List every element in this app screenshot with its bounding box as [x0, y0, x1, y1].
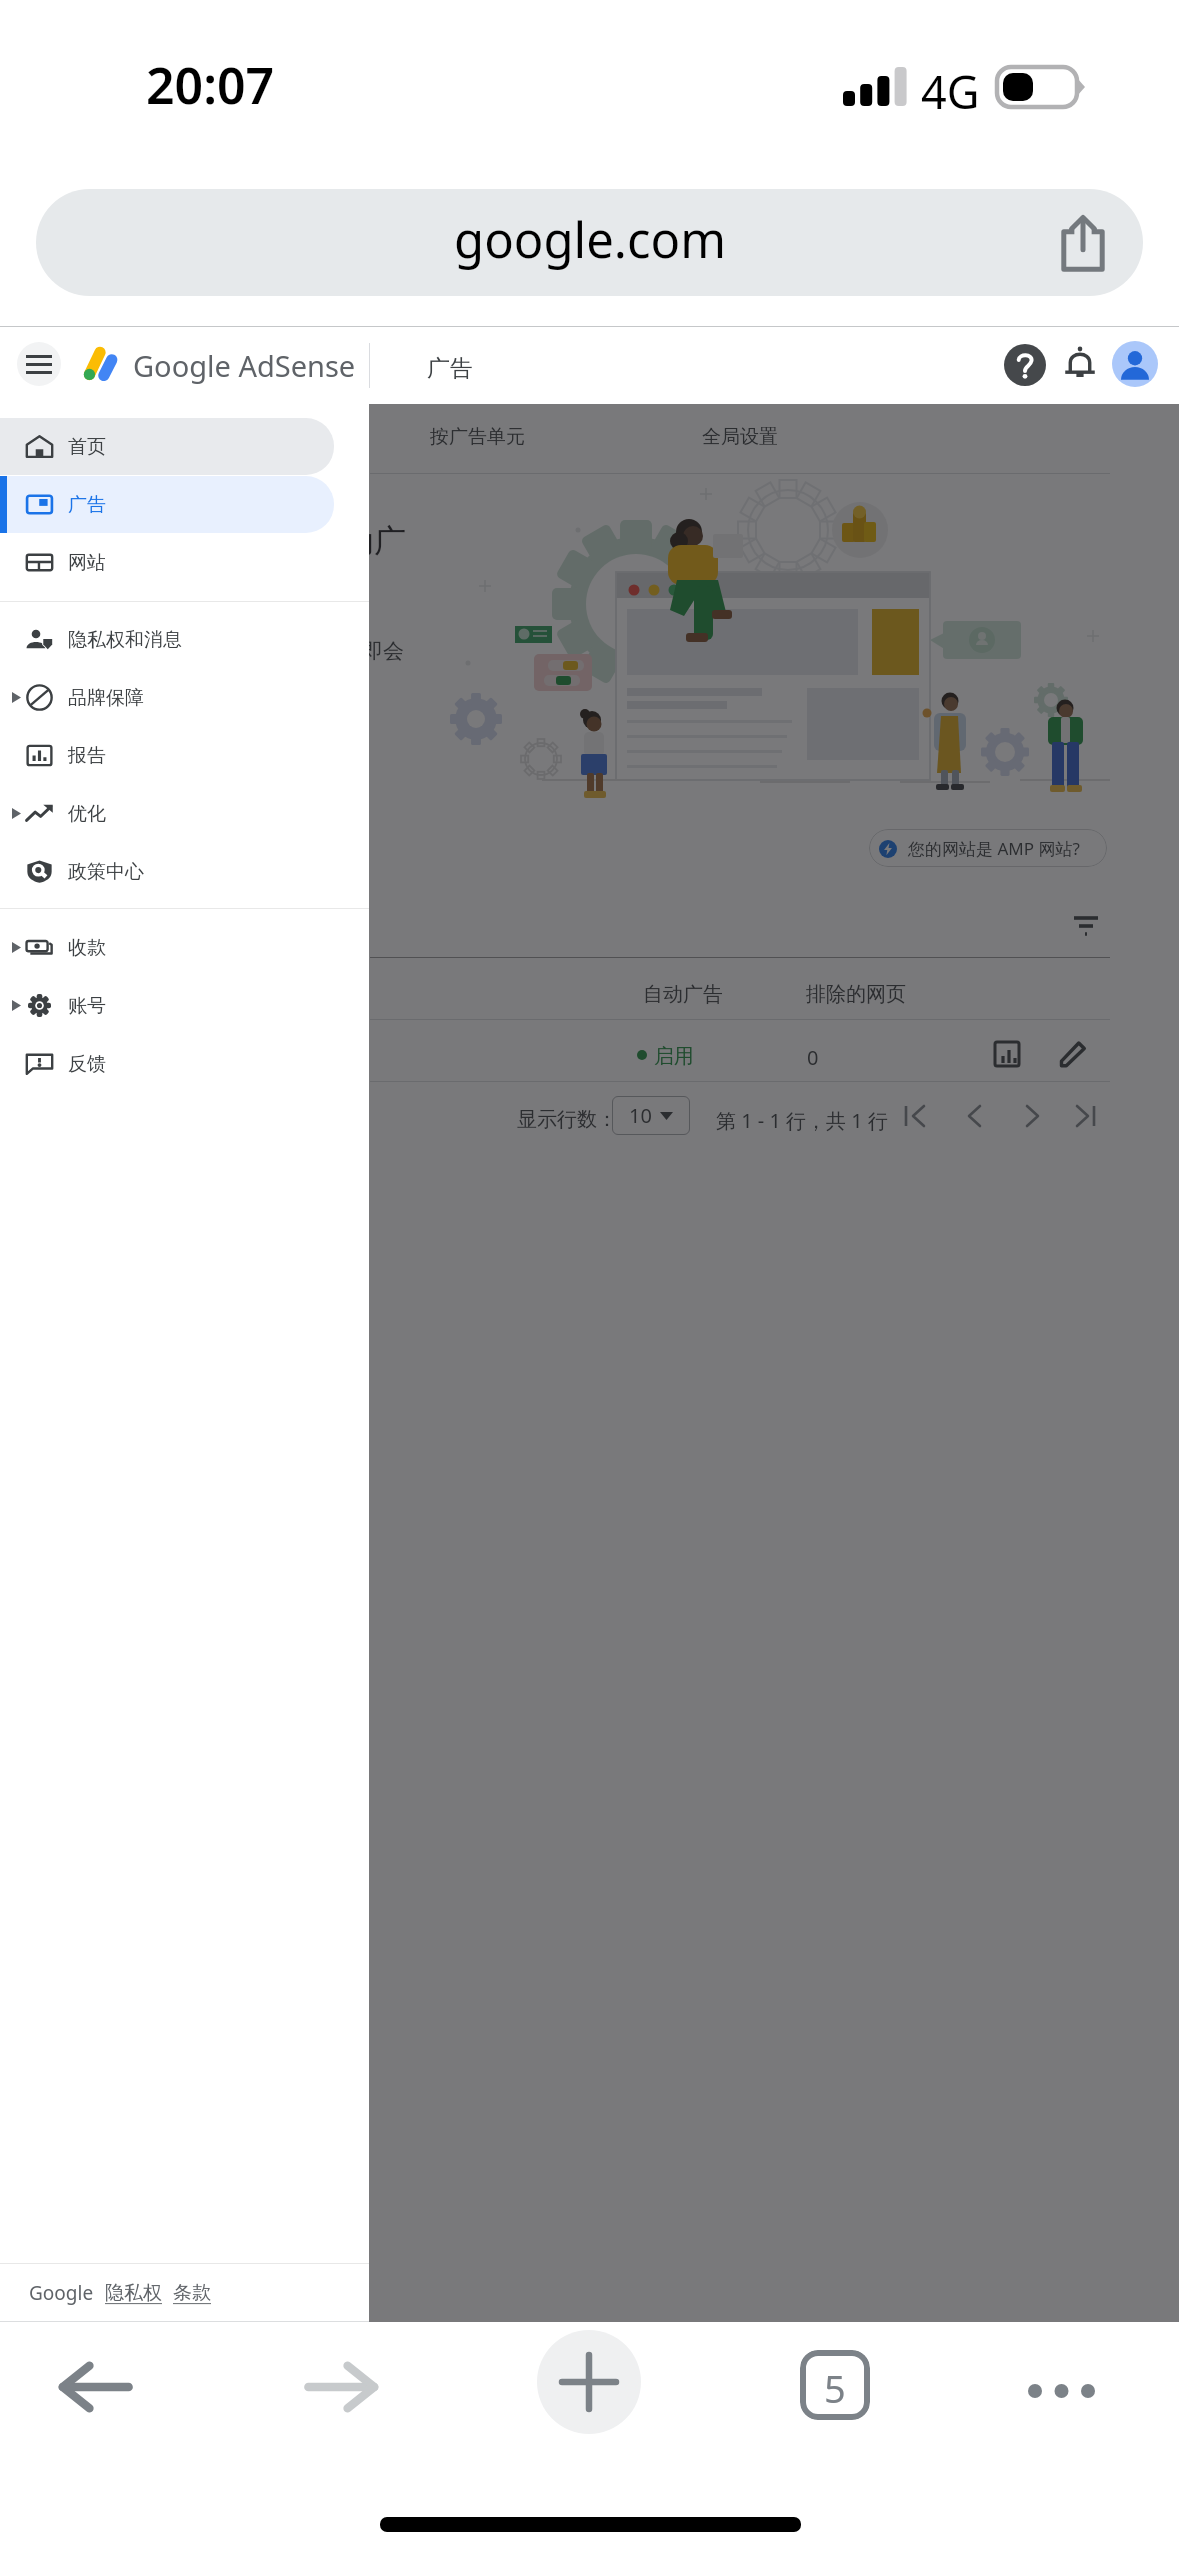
button[interactable]: Main menu	[17, 342, 61, 386]
staticText: 排除的网页	[806, 982, 906, 1007]
button[interactable]: 隐私权	[105, 2281, 162, 2305]
staticText: 按广告单元	[430, 425, 525, 449]
button[interactable]: 您的网站是 AMP 网站?	[869, 829, 1107, 867]
staticText: 第 1 - 1 行，共 1 行	[716, 1107, 888, 1134]
button[interactable]: New tab	[537, 2330, 641, 2434]
button[interactable]: Forward	[294, 2339, 390, 2435]
button[interactable]: Notifications	[1058, 343, 1102, 387]
staticText: 隐私权和消息	[68, 628, 182, 652]
staticText: 首页	[68, 435, 106, 459]
staticText: Google AdSense	[133, 346, 356, 385]
staticText: 启用	[654, 1044, 694, 1069]
button[interactable]: 网站	[0, 534, 334, 591]
staticText: 自动广告	[643, 982, 723, 1007]
button[interactable]: 账号	[0, 977, 334, 1034]
button[interactable]: 广告	[0, 476, 334, 533]
button[interactable]: Edit	[1050, 1031, 1096, 1077]
button[interactable]: google.com	[36, 189, 1143, 296]
staticText: 0	[807, 1044, 819, 1071]
staticText: 您的网站是 AMP 网站?	[908, 837, 1080, 860]
staticText: 报告	[68, 744, 106, 768]
button[interactable]: 优化	[0, 785, 334, 842]
button[interactable]: 品牌保障	[0, 669, 334, 726]
staticText: Google	[29, 2280, 94, 2306]
button[interactable]: 按广告单元	[411, 411, 541, 463]
button[interactable]: View report	[984, 1031, 1030, 1077]
button[interactable]: 收款	[0, 919, 334, 976]
button[interactable]: 首页	[0, 418, 334, 475]
button[interactable]: More	[1014, 2343, 1110, 2439]
staticText: 动广	[342, 521, 406, 561]
staticText: 反馈	[68, 1052, 106, 1076]
staticText: 广告	[427, 354, 473, 383]
staticText: 政策中心	[68, 860, 144, 884]
button[interactable]: 隐私权和消息	[0, 611, 334, 668]
staticText: 显示行数：	[517, 1107, 617, 1132]
button[interactable]: 政策中心	[0, 843, 334, 900]
staticText: 5	[824, 2362, 846, 2414]
staticText: 优化	[68, 802, 106, 826]
button[interactable]: 报告	[0, 727, 334, 784]
button[interactable]: 条款	[173, 2281, 211, 2305]
staticText: 告即会	[341, 638, 404, 664]
staticText: 10	[629, 1102, 652, 1129]
button[interactable]: 全局设置	[684, 411, 794, 463]
button[interactable]: Google Account	[1112, 341, 1158, 387]
staticText: 品牌保障	[68, 686, 144, 710]
button[interactable]: Back	[47, 2339, 143, 2435]
button[interactable]: 10	[612, 1096, 690, 1135]
staticText: google.com	[454, 206, 726, 273]
staticText: 全局设置	[702, 425, 778, 449]
button[interactable]: Tabs	[800, 2350, 870, 2420]
staticText: 收款	[68, 936, 106, 960]
button[interactable]: Share	[1043, 203, 1123, 283]
button[interactable]: 反馈	[0, 1035, 334, 1092]
staticText: 账号	[68, 994, 106, 1018]
staticText: 网站	[68, 551, 106, 575]
staticText: 20:07	[146, 51, 275, 119]
button[interactable]: Help	[1003, 343, 1047, 387]
staticText: 广告	[68, 493, 106, 517]
staticText: 4G	[921, 61, 980, 122]
button[interactable]: Filter	[1063, 901, 1109, 947]
